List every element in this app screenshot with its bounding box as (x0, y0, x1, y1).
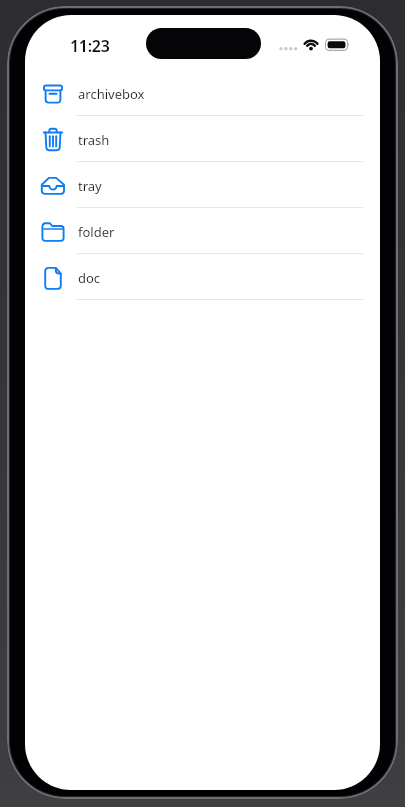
button[interactable]: trash (25, 116, 380, 162)
button[interactable]: archivebox (25, 70, 380, 116)
staticText: trash (78, 131, 110, 149)
button[interactable]: tray (25, 162, 380, 208)
button[interactable]: folder (25, 208, 380, 254)
staticText: archivebox (78, 85, 145, 103)
staticText: folder (78, 223, 115, 241)
staticText: tray (78, 177, 102, 195)
staticText: 11:23 (70, 35, 110, 56)
staticText: doc (78, 269, 101, 287)
button[interactable]: doc (25, 254, 380, 300)
